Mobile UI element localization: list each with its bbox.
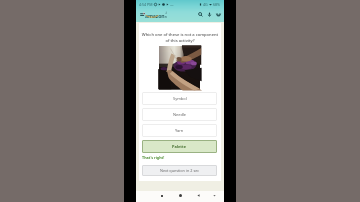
staticText: 4G — [203, 2, 208, 7]
staticText: Which one of these is not a component of… — [141, 32, 219, 44]
staticText: .in — [165, 11, 167, 19]
button[interactable]: Hide keyboard — [210, 191, 219, 200]
staticText: amazon — [145, 12, 165, 19]
button[interactable]: Needle — [142, 108, 217, 121]
staticText: Next question in 2 sec — [160, 168, 200, 173]
staticText: 4:54 PM — [139, 2, 153, 7]
staticText: Symbol — [173, 96, 187, 101]
staticText: Needle — [173, 112, 187, 117]
staticText: That's right! — [142, 155, 165, 160]
staticText: 68% — [213, 2, 221, 7]
staticText: Palette — [172, 144, 187, 149]
button[interactable]: Next question in 2 sec — [142, 165, 217, 176]
button[interactable]: Yarn — [142, 124, 217, 137]
button[interactable]: Symbol — [142, 92, 217, 105]
button[interactable]: Back — [194, 191, 203, 200]
button[interactable]: Search — [196, 10, 205, 19]
button[interactable]: Palette — [142, 140, 217, 153]
staticText: — — [170, 2, 174, 7]
button[interactable]: Cart — [214, 10, 223, 19]
button[interactable]: Recents — [157, 191, 166, 200]
button[interactable]: Menu — [138, 8, 146, 21]
button[interactable]: Home — [176, 191, 185, 200]
button[interactable]: Voice search — [205, 10, 214, 19]
staticText: Yarn — [175, 128, 184, 133]
